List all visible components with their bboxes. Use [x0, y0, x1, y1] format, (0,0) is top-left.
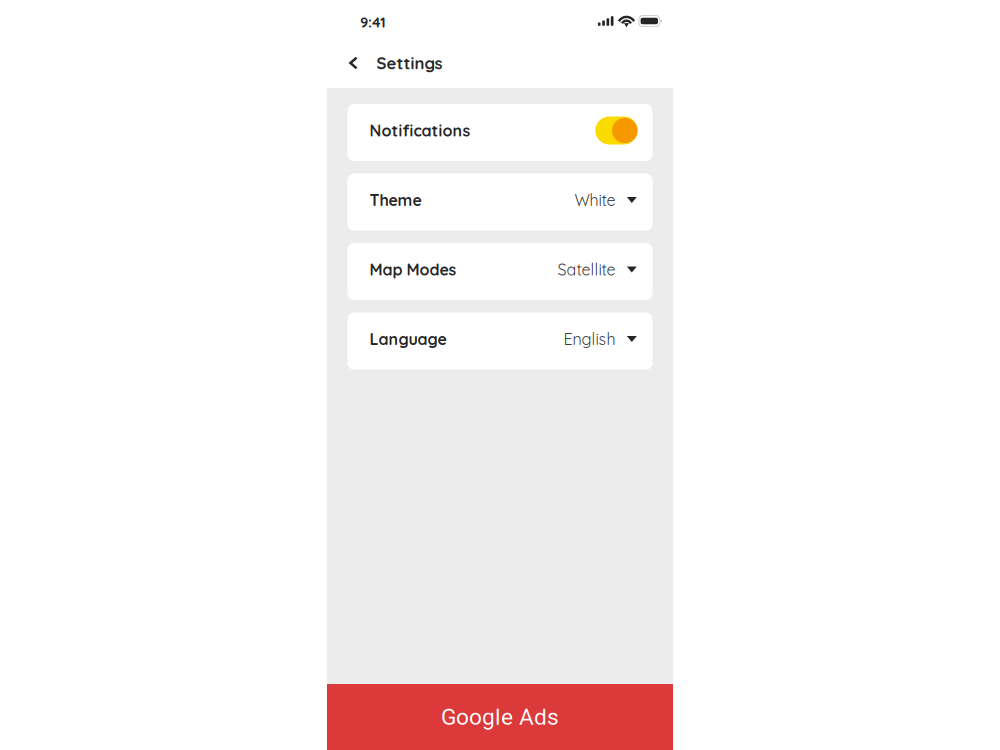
- staticText: Google Ads: [441, 704, 559, 730]
- staticText: Language: [369, 329, 446, 349]
- staticText: Satellite: [558, 259, 616, 279]
- button[interactable]: Notifications: [347, 104, 652, 161]
- button[interactable]: Theme: [347, 173, 652, 230]
- button[interactable]: Google Ads: [327, 684, 673, 750]
- staticText: English: [564, 329, 616, 349]
- staticText: White: [575, 190, 616, 210]
- staticText: Notifications: [369, 120, 470, 140]
- button[interactable]: Back: [340, 45, 366, 81]
- staticText: Map Modes: [369, 259, 456, 279]
- staticText: 9:41: [360, 13, 386, 31]
- button[interactable]: Map Modes: [347, 243, 652, 300]
- staticText: Theme: [369, 190, 421, 210]
- button[interactable]: Notifications on: [595, 116, 638, 144]
- button[interactable]: Language: [347, 312, 652, 369]
- staticText: Settings: [376, 53, 442, 73]
